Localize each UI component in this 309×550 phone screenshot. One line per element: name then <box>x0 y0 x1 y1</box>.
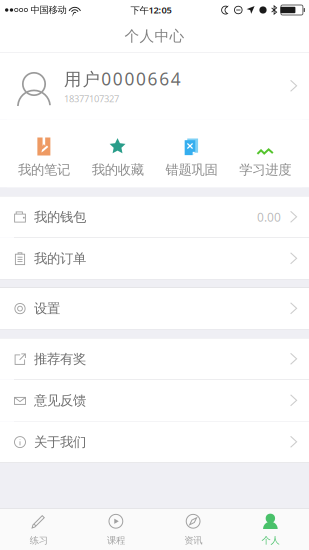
staticText: 中国移动 <box>28 4 70 16</box>
staticText: 关于我们 <box>34 434 86 450</box>
staticText: 我的笔记 <box>18 161 70 178</box>
staticText: 推荐有奖 <box>34 351 86 367</box>
staticText: 设置 <box>34 300 60 317</box>
staticText: 我的收藏 <box>92 161 144 178</box>
button[interactable]: 我的笔记 <box>7 119 81 187</box>
button[interactable]: 我的收藏 <box>81 119 155 187</box>
button[interactable]: 我的订单 <box>0 238 309 279</box>
staticText: 个人 <box>261 535 279 546</box>
staticText: 下午12:05 <box>130 4 171 16</box>
staticText: 我的订单 <box>34 250 86 267</box>
staticText: 18377107327 <box>64 92 119 105</box>
button[interactable]: 资讯 <box>154 509 232 550</box>
button[interactable]: 设置 <box>0 288 309 329</box>
staticText: 0.00 <box>257 209 281 225</box>
staticText: 练习 <box>30 535 48 546</box>
button[interactable]: 个人 <box>232 509 309 550</box>
staticText: 个人中心 <box>124 27 184 45</box>
button[interactable]: 课程 <box>77 509 154 550</box>
button[interactable]: 错题巩固 <box>154 119 228 187</box>
button[interactable]: 学习进度 <box>228 119 302 187</box>
staticText: 课程 <box>107 535 125 546</box>
button[interactable]: 关于我们 <box>0 421 309 462</box>
staticText: 意见反馈 <box>34 392 86 409</box>
staticText: 学习进度 <box>239 161 291 178</box>
staticText: 错题巩固 <box>165 161 217 178</box>
button[interactable]: 练习 <box>0 509 77 550</box>
staticText: 我的钱包 <box>34 209 86 225</box>
staticText: 资讯 <box>184 535 202 546</box>
button[interactable]: 推荐有奖 <box>0 338 309 379</box>
button[interactable]: 意见反馈 <box>0 380 309 421</box>
staticText: 用户0000664 <box>64 67 181 90</box>
button[interactable]: 我的钱包 <box>0 196 309 237</box>
button[interactable]: 用户0000664 <box>0 52 309 119</box>
